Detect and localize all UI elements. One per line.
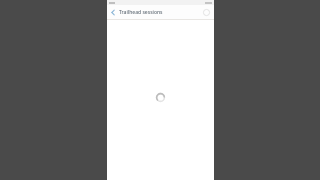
other: Back [109,8,118,17]
button[interactable]: Back [107,5,214,19]
button[interactable]: More options [203,9,210,16]
other: Loading [155,92,166,103]
staticText: Trailhead sessions [119,9,163,16]
